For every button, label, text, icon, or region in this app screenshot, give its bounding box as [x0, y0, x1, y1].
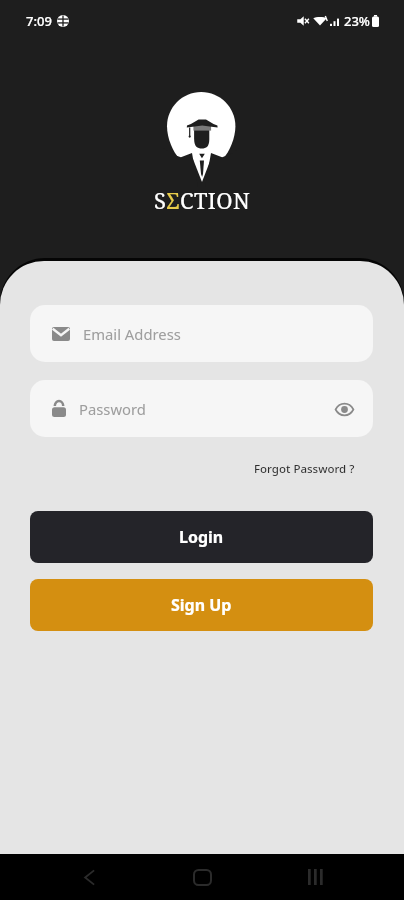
staticText: 23%	[344, 12, 370, 30]
staticText: Forgot Password ?	[254, 461, 355, 477]
staticText: SΣCTION	[154, 185, 251, 215]
button[interactable]: Home	[180, 855, 224, 899]
button[interactable]: Recents	[294, 855, 338, 899]
button[interactable]: Sign Up	[30, 579, 373, 631]
button[interactable]: Show password	[333, 398, 355, 420]
button[interactable]: Email Address	[30, 305, 373, 362]
button[interactable]: Back	[67, 855, 111, 899]
staticText: Login	[179, 526, 224, 548]
button[interactable]: Password	[30, 380, 373, 437]
button[interactable]: Login	[30, 511, 373, 563]
staticText: 7:09	[26, 12, 52, 30]
staticText: Password	[79, 399, 146, 419]
staticText: Sign Up	[171, 594, 232, 616]
staticText: Email Address	[83, 324, 181, 344]
button[interactable]: Forgot Password ?	[252, 459, 357, 479]
